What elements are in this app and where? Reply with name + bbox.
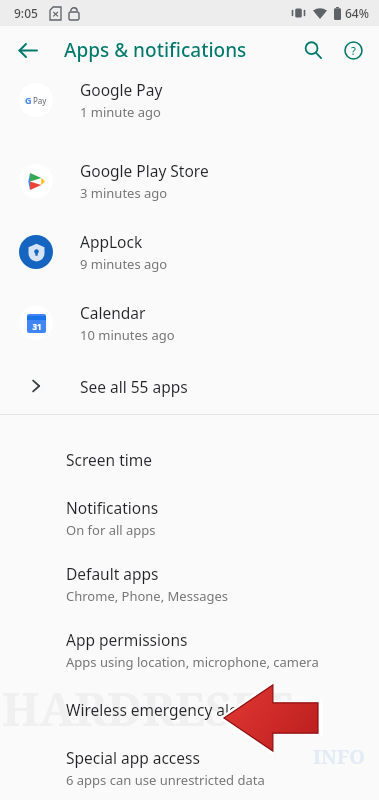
staticText: Screen time	[66, 449, 152, 470]
staticText: App permissions	[66, 629, 188, 650]
staticText: On for all apps	[66, 521, 156, 539]
staticText: Google Pay	[80, 79, 163, 100]
button[interactable]: Back	[8, 31, 46, 69]
staticText: Special app access	[66, 747, 200, 768]
staticText: See all 55 apps	[80, 376, 188, 397]
button[interactable]: Notifications	[0, 485, 379, 551]
staticText: Apps & notifications	[64, 37, 247, 63]
staticText: Notifications	[66, 497, 159, 518]
button[interactable]: Help	[333, 30, 373, 70]
staticText: Apps using location, microphone, camera	[66, 653, 319, 671]
button[interactable]: Screen time	[0, 433, 379, 485]
button[interactable]: 31	[0, 287, 379, 358]
button[interactable]: G	[0, 74, 379, 145]
button[interactable]: AppLock	[0, 216, 379, 287]
staticText: 6 apps can use unrestricted data	[66, 771, 265, 789]
staticText: 3 minutes ago	[80, 184, 168, 202]
staticText: 64%	[345, 5, 369, 21]
staticText: AppLock	[80, 231, 143, 252]
button[interactable]: Google Play Store	[0, 145, 379, 216]
staticText: Calendar	[80, 302, 146, 323]
staticText: INFO	[313, 743, 365, 770]
staticText: G	[25, 94, 32, 106]
staticText: 10 minutes ago	[80, 326, 175, 344]
staticText: Google Play Store	[80, 160, 209, 181]
staticText: 1 minute ago	[80, 103, 161, 121]
staticText: 31	[32, 321, 42, 332]
staticText: Pay	[33, 95, 47, 106]
staticText: Wireless emergency alerts	[66, 699, 258, 720]
button[interactable]: App permissions	[0, 617, 379, 683]
button[interactable]: Default apps	[0, 551, 379, 617]
button[interactable]: Wireless emergency alerts	[0, 683, 379, 735]
button[interactable]: Search	[293, 30, 333, 70]
button[interactable]: Special app access	[0, 735, 379, 800]
staticText: ?	[351, 43, 356, 58]
staticText: Chrome, Phone, Messages	[66, 587, 228, 605]
button[interactable]: See all 55 apps	[0, 358, 379, 414]
staticText: HARDRESET	[2, 677, 292, 740]
staticText: 9:05	[14, 5, 38, 21]
staticText: 9 minutes ago	[80, 255, 168, 273]
staticText: Default apps	[66, 563, 159, 584]
